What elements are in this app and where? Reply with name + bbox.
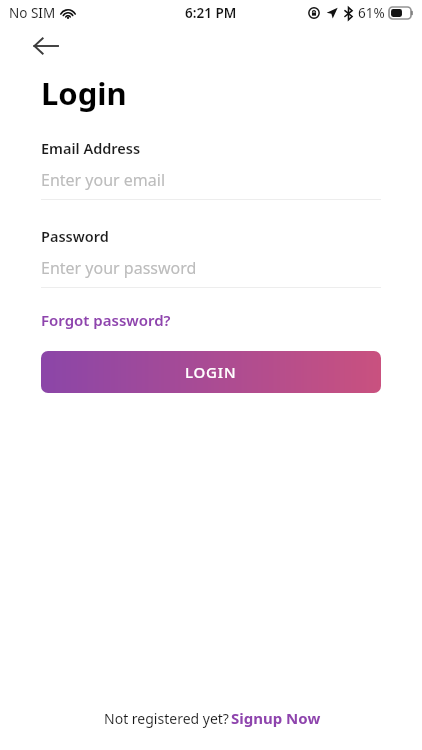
button[interactable]: Signup Now — [231, 708, 321, 728]
staticText: LOGIN — [185, 362, 237, 382]
button[interactable]: Enter your password — [41, 256, 381, 280]
staticText: 61% — [358, 4, 385, 22]
staticText: Forgot password? — [41, 310, 171, 330]
staticText: Email Address — [41, 138, 141, 158]
staticText: Not registered yet? — [102, 709, 231, 728]
button[interactable]: Enter your email — [41, 168, 381, 192]
staticText: Signup Now — [231, 708, 321, 728]
staticText: Login — [41, 72, 127, 114]
staticText: No SIM — [9, 4, 56, 22]
button[interactable]: LOGIN — [41, 351, 381, 393]
staticText: Password — [41, 226, 109, 246]
staticText: Enter your email — [41, 169, 166, 191]
staticText: Enter your password — [41, 257, 197, 279]
button[interactable]: Forgot password? — [41, 310, 171, 330]
staticText: 6:21 PM — [185, 4, 237, 22]
button[interactable]: Back — [28, 28, 64, 64]
